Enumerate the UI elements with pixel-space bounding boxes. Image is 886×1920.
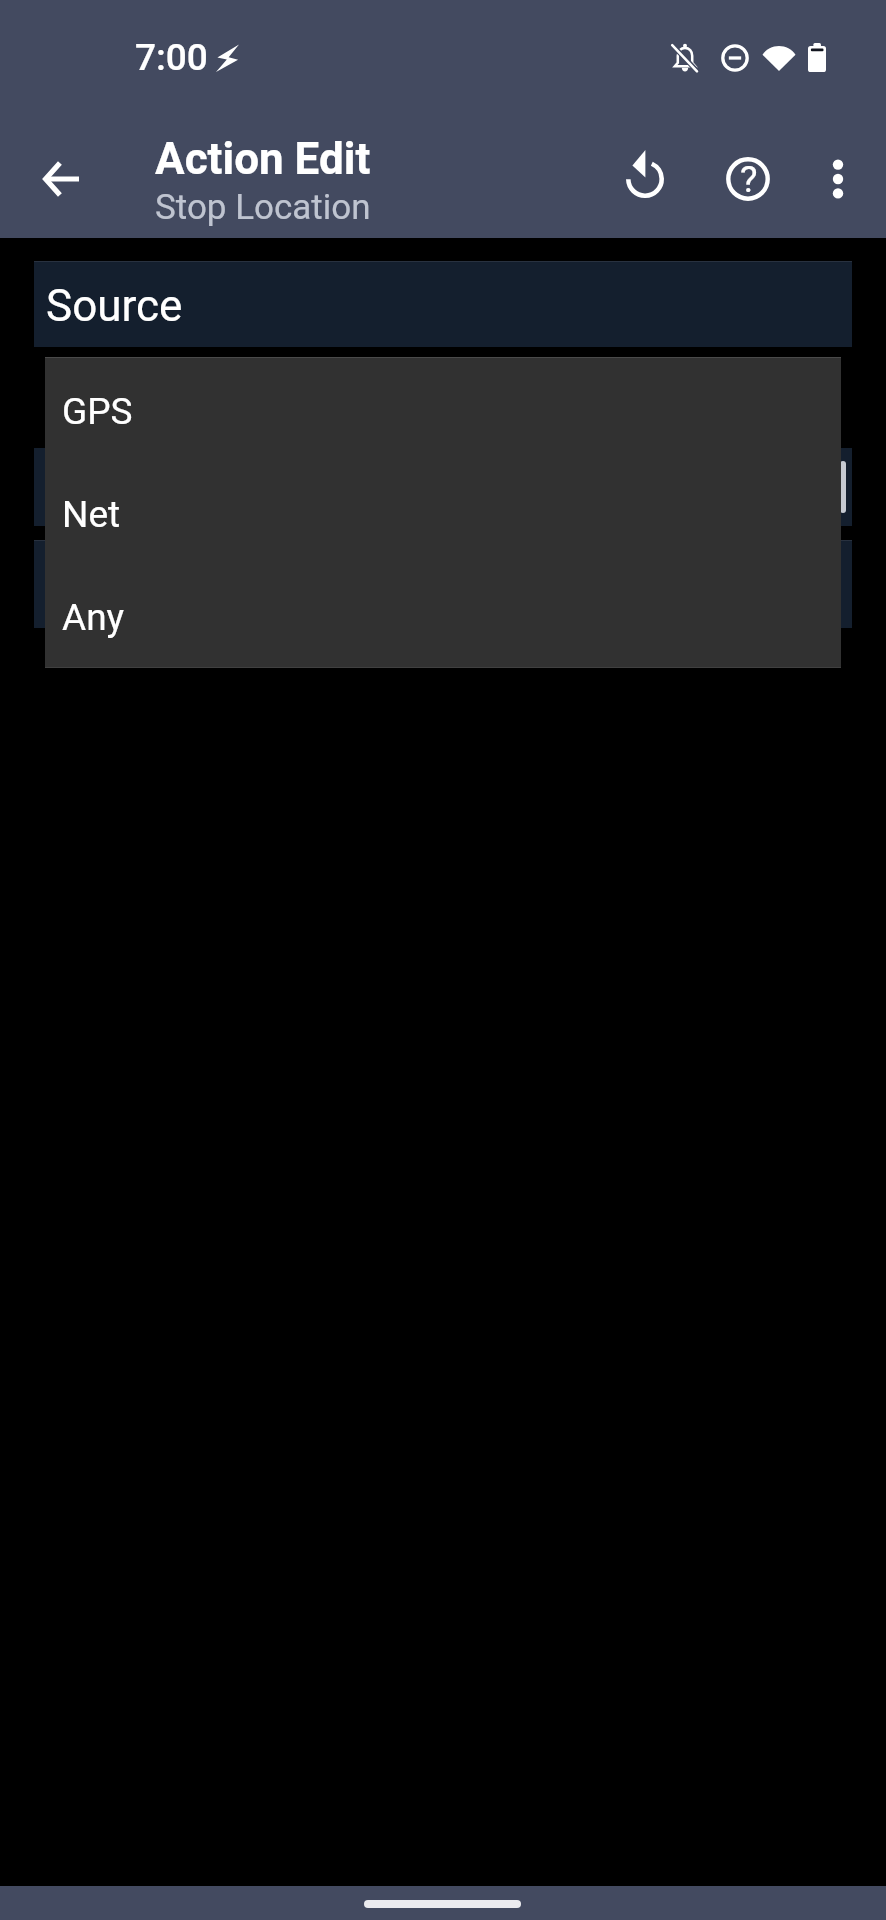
button[interactable]	[34, 448, 852, 526]
button[interactable]: Help	[700, 131, 796, 227]
button[interactable]: GPS	[45, 357, 841, 460]
staticText: Net	[62, 493, 121, 536]
button[interactable]	[34, 540, 852, 628]
staticText: Any	[62, 596, 125, 639]
staticText: Stop Location	[155, 187, 371, 228]
staticText: ?	[740, 158, 758, 201]
button[interactable]: Navigate up	[13, 131, 109, 227]
button[interactable]: More options	[790, 131, 886, 227]
staticText: GPS	[62, 390, 133, 433]
staticText: Source	[46, 280, 183, 332]
staticText: 7:00	[135, 36, 208, 79]
button[interactable]: Net	[45, 460, 841, 563]
button[interactable]: Undo	[597, 131, 693, 227]
staticText: Action Edit	[155, 133, 371, 185]
button[interactable]: Action Edit	[150, 124, 590, 238]
button[interactable]: Source	[34, 261, 852, 347]
button[interactable]: Any	[45, 563, 841, 666]
